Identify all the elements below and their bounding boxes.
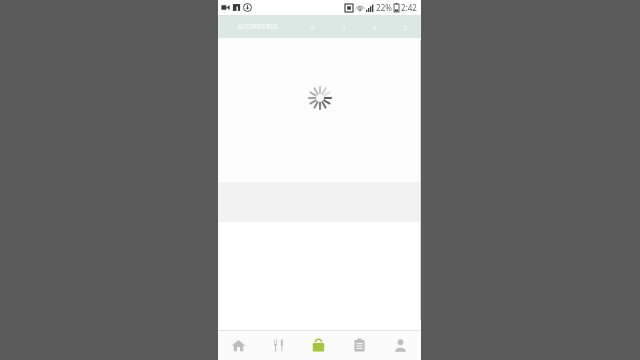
button[interactable]: Home <box>218 331 258 360</box>
button[interactable]: Restaurants <box>258 331 298 360</box>
staticText: 2 <box>310 22 315 32</box>
button[interactable]: Profile <box>380 331 421 360</box>
staticText: 2:42 <box>401 2 417 13</box>
staticText: ACORDERIA <box>237 22 278 32</box>
button[interactable]: Cart <box>298 331 339 360</box>
button[interactable]: ACORDERIA <box>218 15 297 38</box>
button[interactable]: Orders <box>339 331 380 360</box>
staticText: 22% <box>376 2 392 13</box>
staticText: 3 <box>341 22 346 32</box>
staticText: 5 <box>403 22 408 32</box>
staticText: 4 <box>372 22 377 32</box>
